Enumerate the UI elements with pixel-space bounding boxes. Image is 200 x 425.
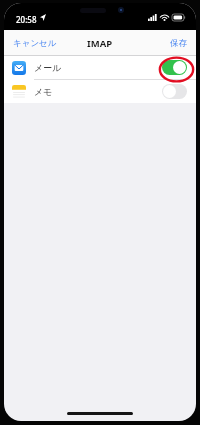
button[interactable]: メモ — [4, 80, 196, 103]
staticText: 20:58 — [16, 14, 37, 25]
staticText: メモ — [34, 86, 162, 97]
button[interactable]: Disabled — [162, 84, 187, 99]
staticText: 保存 — [170, 38, 187, 49]
button[interactable]: キャンセル — [4, 33, 65, 54]
staticText: メール — [34, 62, 162, 73]
button[interactable]: 保存 — [162, 33, 196, 54]
staticText: キャンセル — [13, 38, 57, 49]
button[interactable]: メール — [4, 56, 196, 79]
staticText: IMAP — [87, 37, 113, 50]
button[interactable]: Enabled — [162, 60, 187, 75]
